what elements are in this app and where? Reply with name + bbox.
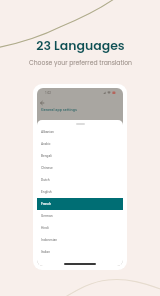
staticText: Indonesian	[41, 238, 58, 242]
staticText: Dutch	[41, 178, 50, 182]
button[interactable]: Italian	[37, 246, 123, 258]
button[interactable]: Albanian	[37, 126, 123, 138]
button[interactable]: French	[37, 198, 123, 210]
button[interactable]: Arabic	[37, 138, 123, 150]
staticText: Bengali	[41, 154, 52, 158]
staticText: Italian	[41, 250, 50, 254]
button[interactable]: Bengali	[37, 150, 123, 162]
button[interactable]: Back	[38, 99, 46, 107]
staticText: Choose your preferred translation	[29, 59, 132, 68]
staticText: German	[41, 214, 53, 218]
staticText: Albanian	[41, 130, 54, 134]
button[interactable]: Hindi	[37, 222, 123, 234]
staticText: English	[41, 190, 52, 194]
button[interactable]: Indonesian	[37, 234, 123, 246]
button[interactable]: English	[37, 186, 123, 198]
button[interactable]: German	[37, 210, 123, 222]
button[interactable]: Dutch	[37, 174, 123, 186]
staticText: Hindi	[41, 226, 49, 230]
staticText: General app settings	[41, 107, 77, 112]
staticText: Chinese	[41, 166, 53, 170]
button[interactable]: Chinese	[37, 162, 123, 174]
staticText: 1:02	[45, 91, 51, 95]
staticText: French	[41, 202, 51, 206]
staticText: Arabic	[41, 142, 51, 146]
staticText: 23 Languages	[36, 37, 125, 54]
